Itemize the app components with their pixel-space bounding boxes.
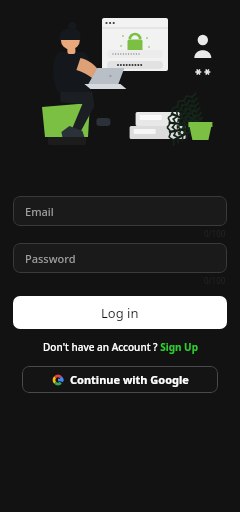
staticText: 0/100 [204, 228, 226, 239]
button[interactable]: Continue with Google [22, 366, 218, 393]
button[interactable]: Email [13, 196, 227, 226]
staticText: Log in [101, 304, 139, 322]
button[interactable]: Password [13, 243, 227, 273]
staticText: Continue with Google [70, 372, 189, 387]
button[interactable]: Don't have an Account ? Sign Up [0, 340, 240, 354]
staticText: Email [25, 204, 54, 219]
button[interactable]: Log in [13, 296, 227, 329]
staticText: 0/100 [204, 275, 226, 286]
staticText: Don't have an Account ? Sign Up [43, 340, 198, 354]
staticText: Password [25, 251, 76, 266]
